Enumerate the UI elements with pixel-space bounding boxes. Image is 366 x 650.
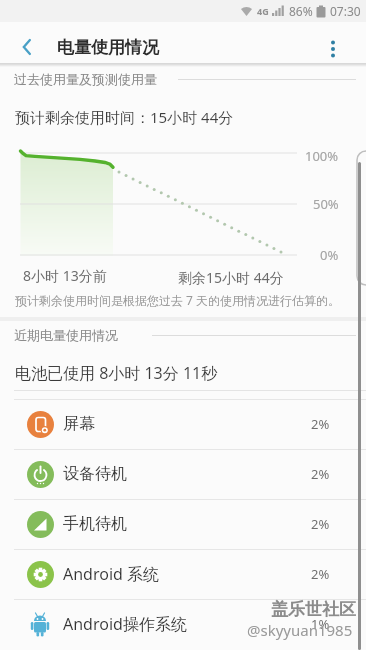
staticText: 设备待机 bbox=[63, 464, 127, 484]
staticText: 2% bbox=[311, 515, 330, 533]
staticText: 电池已使用 8小时 13分 11秒 bbox=[15, 362, 218, 384]
staticText: 过去使用量及预测使用量 bbox=[14, 71, 157, 87]
button[interactable]: Android 系统 bbox=[0, 549, 366, 599]
staticText: 盖乐世社区 bbox=[271, 599, 356, 619]
staticText: 2% bbox=[311, 465, 330, 483]
staticText: 近期电量使用情况 bbox=[14, 327, 118, 343]
staticText: 屏幕 bbox=[63, 414, 95, 434]
staticText: 0% bbox=[320, 246, 339, 264]
staticText: 86% bbox=[289, 3, 313, 19]
button[interactable] bbox=[316, 32, 350, 66]
staticText: 剩余15小时 44分 bbox=[178, 268, 284, 287]
staticText: 预计剩余使用时间是根据您过去 7 天的使用情况进行估算的。 bbox=[15, 292, 341, 308]
staticText: 手机待机 bbox=[63, 514, 127, 534]
staticText: Android 系统 bbox=[63, 563, 160, 585]
staticText: 50% bbox=[313, 195, 339, 213]
staticText: 2% bbox=[311, 565, 330, 583]
button[interactable]: 屏幕 bbox=[0, 399, 366, 449]
staticText: 预计剩余使用时间：15小时 44分 bbox=[15, 107, 234, 127]
button[interactable]: Android操作系统 bbox=[0, 599, 366, 649]
staticText: @skyyuan1985 bbox=[247, 620, 353, 640]
staticText: Android操作系统 bbox=[63, 613, 187, 635]
button[interactable]: 设备待机 bbox=[0, 449, 366, 499]
staticText: 8小时 13分前 bbox=[23, 266, 107, 285]
button[interactable]: 手机待机 bbox=[0, 499, 366, 549]
staticText: 1% bbox=[311, 615, 330, 633]
staticText: 07:30 bbox=[330, 3, 361, 19]
staticText: 4G bbox=[257, 5, 269, 17]
staticText: 100% bbox=[305, 147, 339, 165]
staticText: 电量使用情况 bbox=[57, 37, 159, 58]
button[interactable] bbox=[8, 28, 46, 66]
staticText: 2% bbox=[311, 415, 330, 433]
